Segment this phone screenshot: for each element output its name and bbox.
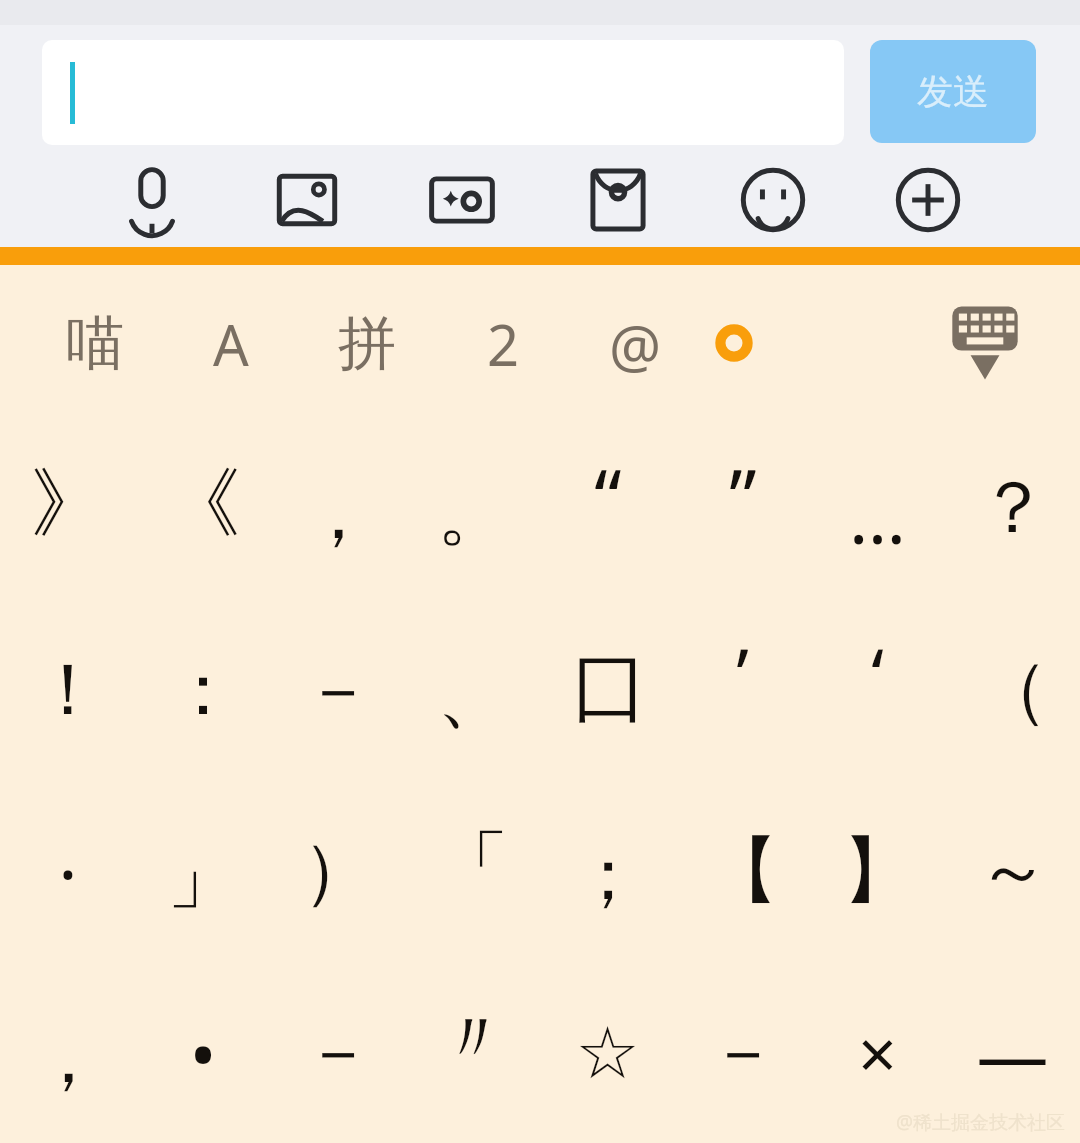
button[interactable]: @ (598, 306, 672, 380)
staticText: 《 (165, 456, 241, 552)
button[interactable]: 「 (405, 781, 540, 962)
staticText: 发送 (917, 69, 989, 114)
staticText: ’ (736, 624, 749, 722)
button[interactable]: ） (270, 781, 405, 962)
button[interactable]: 、 (405, 600, 540, 781)
staticText: ？ (977, 463, 1049, 554)
button[interactable]: Photo (260, 153, 354, 247)
staticText: － (302, 1007, 374, 1098)
staticText: 2 (487, 306, 520, 380)
button[interactable]: 」 (135, 781, 270, 962)
button[interactable]: … (810, 420, 945, 600)
staticText: ！ (32, 645, 104, 736)
staticText: 喵 (66, 307, 124, 380)
staticText: ： (167, 645, 239, 736)
button[interactable]: Hide keyboard (940, 298, 1030, 388)
button[interactable]: — (945, 962, 1080, 1143)
button[interactable]: ” (675, 420, 810, 600)
button[interactable]: 拼 (330, 306, 404, 380)
button[interactable]: 喵 (58, 306, 132, 380)
staticText: ） (302, 826, 374, 917)
button[interactable]: · (0, 781, 135, 962)
staticText: ～ (977, 826, 1049, 917)
button[interactable]: Punctuation (706, 315, 762, 371)
button[interactable]: Sticker (415, 153, 509, 247)
button[interactable]: More (881, 153, 975, 247)
staticText: － (302, 645, 374, 736)
button[interactable]: ？ (945, 420, 1080, 600)
staticText: 〃 (437, 993, 509, 1084)
button[interactable]: Voice message (105, 153, 199, 247)
button[interactable]: ‘ (810, 600, 945, 781)
button[interactable]: ’ (675, 600, 810, 781)
staticText: @ (609, 306, 662, 380)
button[interactable]: Emoji (726, 153, 820, 247)
staticText: ； (572, 830, 644, 921)
staticText: ‘ (871, 624, 884, 722)
button[interactable]: 。 (405, 420, 540, 600)
staticText: － (707, 1007, 779, 1098)
button[interactable]: ： (135, 600, 270, 781)
button[interactable]: － (270, 962, 405, 1143)
staticText: @稀土掘金技术社区 (896, 1109, 1066, 1135)
staticText: “ (594, 444, 622, 548)
staticText: 拼 (338, 307, 396, 380)
staticText: ， (302, 469, 374, 560)
button[interactable]: Red packet (571, 153, 665, 247)
button[interactable]: 》 (0, 420, 135, 600)
staticText: 。 (437, 469, 509, 560)
button[interactable]: ☆ (540, 962, 675, 1143)
button[interactable]: 发送 (870, 40, 1036, 143)
staticText: · (58, 823, 78, 921)
staticText: 「 (437, 820, 509, 911)
button[interactable]: ！ (0, 600, 135, 781)
staticText: × (858, 1006, 897, 1099)
button[interactable]: ； (540, 781, 675, 962)
button[interactable]: 【 (675, 781, 810, 962)
button[interactable]: （ (945, 600, 1080, 781)
button[interactable]: 《 (135, 420, 270, 600)
button[interactable]: “ (540, 420, 675, 600)
button[interactable]: － (270, 600, 405, 781)
staticText: ， (32, 1013, 104, 1104)
button[interactable]: － (675, 962, 810, 1143)
staticText: • (189, 1004, 217, 1102)
button[interactable]: ～ (945, 781, 1080, 962)
button[interactable]: ， (0, 962, 135, 1143)
staticText: 囗 (572, 645, 644, 736)
staticText: 》 (30, 456, 106, 552)
button[interactable]: ， (270, 420, 405, 600)
staticText: 」 (167, 832, 239, 923)
staticText: A (213, 306, 249, 380)
button[interactable]: • (135, 962, 270, 1143)
staticText: 、 (437, 651, 509, 742)
button[interactable]: × (810, 962, 945, 1143)
staticText: … (849, 467, 906, 565)
button[interactable]: A (194, 306, 268, 380)
staticText: ” (729, 444, 757, 548)
button[interactable]: 2 (466, 306, 540, 380)
button[interactable]: 】 (810, 781, 945, 962)
staticText: 【 (707, 826, 779, 917)
button[interactable] (42, 40, 844, 145)
staticText: ☆ (575, 1011, 640, 1095)
staticText: 】 (842, 826, 914, 917)
button[interactable]: 囗 (540, 600, 675, 781)
button[interactable]: 〃 (405, 962, 540, 1143)
staticText: — (976, 1004, 1049, 1102)
staticText: （ (977, 645, 1049, 736)
